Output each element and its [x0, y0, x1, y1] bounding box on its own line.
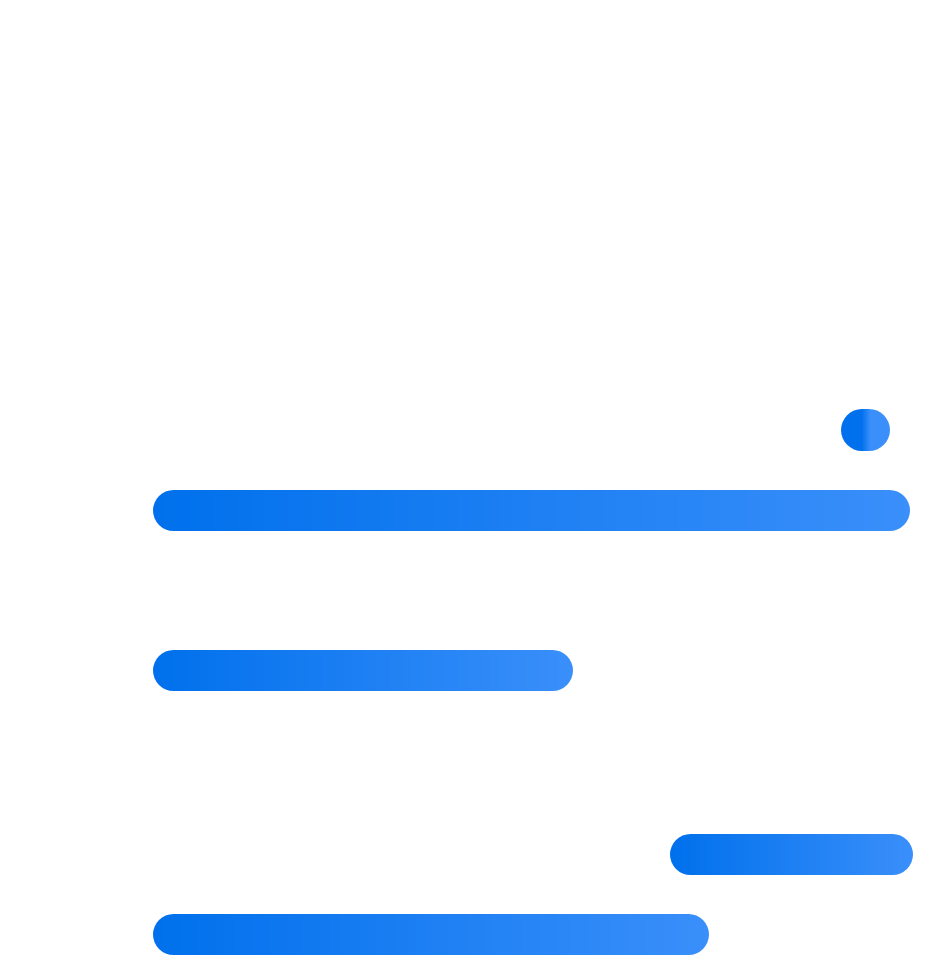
button[interactable]: Body placeholder — [153, 650, 573, 691]
button[interactable]: Action placeholder — [670, 834, 913, 875]
button[interactable]: Footer placeholder — [153, 914, 709, 955]
button[interactable]: Headline placeholder — [153, 490, 910, 531]
button[interactable]: Badge placeholder — [841, 409, 890, 451]
